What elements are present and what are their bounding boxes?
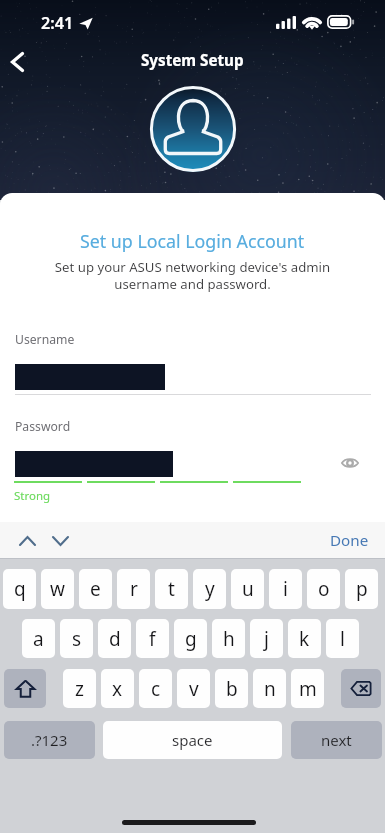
staticText: next <box>321 730 352 750</box>
staticText: f <box>149 626 156 652</box>
button[interactable]: i <box>269 569 302 609</box>
staticText: l <box>340 626 345 652</box>
staticText: o <box>318 576 330 602</box>
staticText: 2:41 <box>41 12 74 34</box>
button[interactable]: z <box>63 669 96 708</box>
button[interactable]: r <box>117 569 150 609</box>
button[interactable]: m <box>291 669 324 708</box>
button[interactable]: v <box>177 669 210 708</box>
staticText: Set up Local Login Account <box>80 229 305 253</box>
staticText: x <box>112 676 123 702</box>
staticText: w <box>50 576 65 602</box>
staticText: u <box>242 576 254 602</box>
button[interactable]: next <box>291 721 382 759</box>
button[interactable]: Done <box>330 522 385 559</box>
button[interactable]: s <box>60 619 93 658</box>
button[interactable]: x <box>101 669 134 708</box>
staticText: n <box>264 676 276 702</box>
staticText: s <box>72 626 82 652</box>
staticText: y <box>205 576 215 602</box>
staticText: m <box>299 676 317 702</box>
button[interactable]: c <box>139 669 172 708</box>
button[interactable]: h <box>212 619 245 658</box>
staticText: Password <box>15 418 71 435</box>
button[interactable]: Back <box>0 45 34 79</box>
button[interactable]: w <box>41 569 74 609</box>
staticText: i <box>283 576 288 602</box>
staticText: c <box>151 676 161 702</box>
button[interactable]: g <box>174 619 207 658</box>
staticText: q <box>14 576 26 602</box>
button[interactable]: Next field <box>47 528 73 554</box>
button[interactable]: .?123 <box>4 721 95 759</box>
button[interactable]: e <box>79 569 112 609</box>
staticText: v <box>189 676 199 702</box>
button[interactable]: Backspace <box>341 669 381 708</box>
staticText: t <box>168 576 175 602</box>
button[interactable]: Show password <box>332 445 368 481</box>
button[interactable]: space <box>103 721 282 759</box>
staticText: k <box>299 626 310 652</box>
staticText: System Setup <box>141 50 244 71</box>
button[interactable]: Previous field <box>14 528 40 554</box>
button[interactable]: o <box>307 569 340 609</box>
staticText: Strong <box>14 488 51 504</box>
staticText: z <box>75 676 84 702</box>
staticText: d <box>109 626 121 652</box>
button[interactable]: d <box>98 619 131 658</box>
staticText: b <box>226 676 238 702</box>
button[interactable]: t <box>155 569 188 609</box>
button[interactable]: l <box>326 619 359 658</box>
staticText: space <box>172 730 213 750</box>
staticText: a <box>33 626 44 652</box>
staticText: Username <box>15 331 75 348</box>
staticText: j <box>264 626 269 652</box>
button[interactable]: p <box>345 569 378 609</box>
button[interactable]: b <box>215 669 248 708</box>
button[interactable]: u <box>231 569 264 609</box>
staticText: p <box>356 576 368 602</box>
staticText: e <box>90 576 101 602</box>
staticText: h <box>223 626 235 652</box>
button[interactable]: y <box>193 569 226 609</box>
staticText: r <box>130 576 138 602</box>
staticText: Set up your ASUS networking device's adm… <box>24 258 361 293</box>
button[interactable]: j <box>250 619 283 658</box>
staticText: .?123 <box>31 730 68 750</box>
staticText: g <box>185 626 197 652</box>
button[interactable]: n <box>253 669 286 708</box>
button[interactable]: a <box>22 619 55 658</box>
button[interactable]: Shift <box>4 669 46 708</box>
button[interactable]: q <box>3 569 36 609</box>
button[interactable]: k <box>288 619 321 658</box>
button[interactable]: f <box>136 619 169 658</box>
staticText: Done <box>330 530 369 551</box>
